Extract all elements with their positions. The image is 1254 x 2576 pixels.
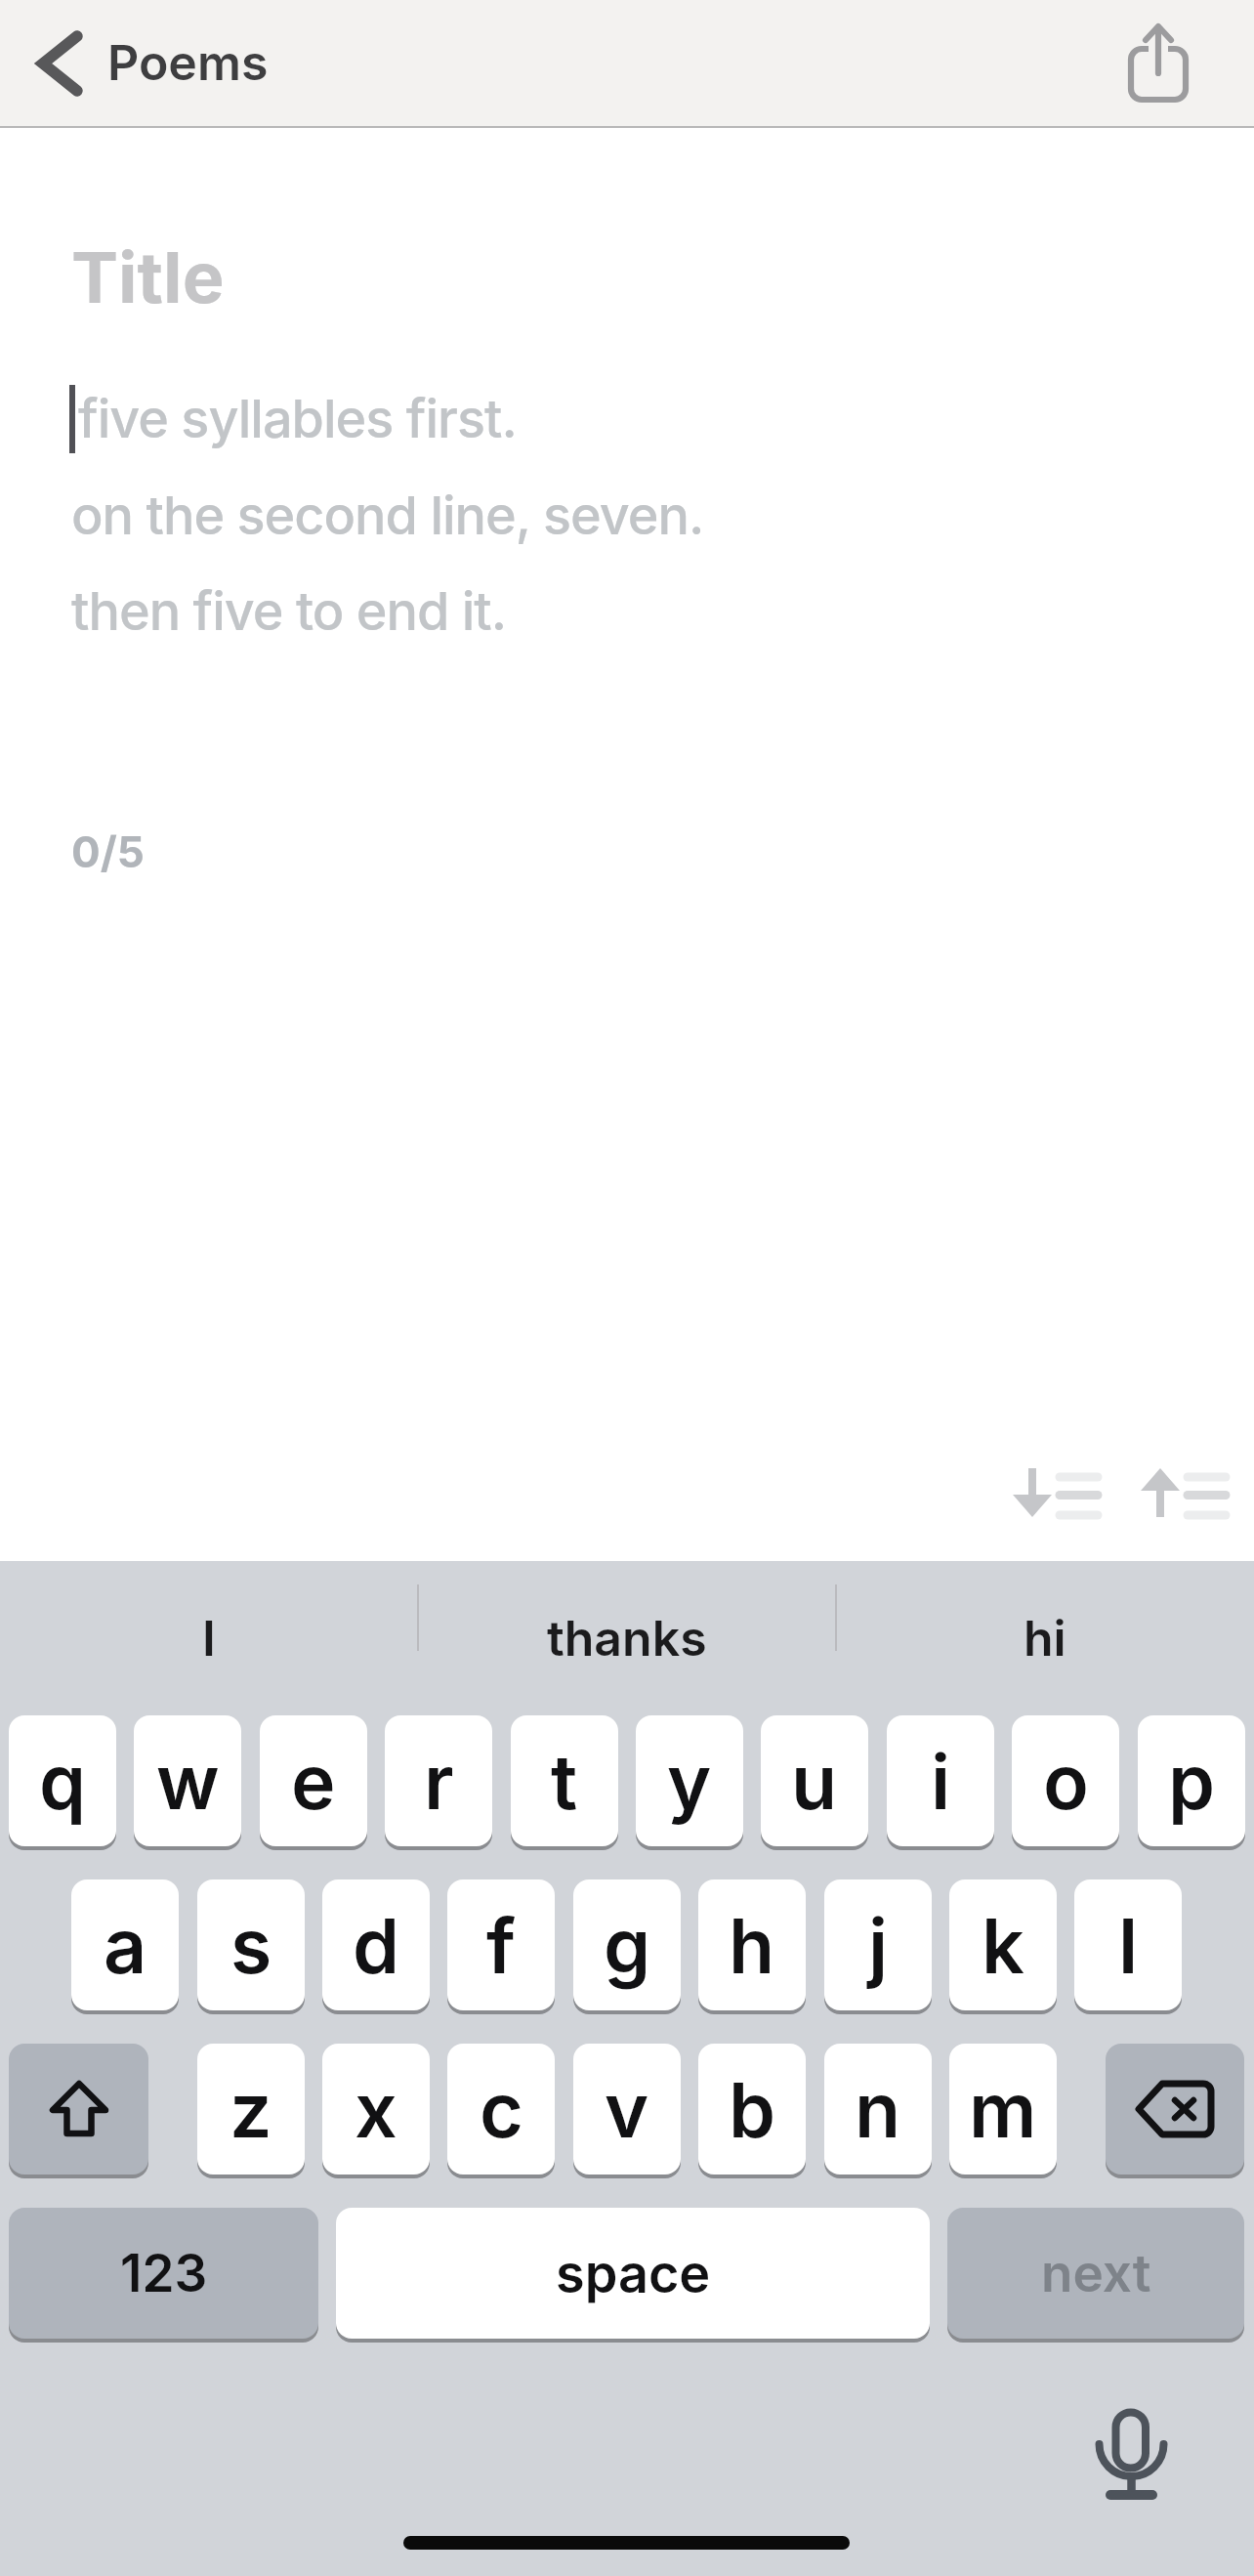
staticText: x	[355, 2064, 397, 2155]
button[interactable]: hi	[836, 1561, 1254, 1715]
staticText: 123	[120, 2242, 208, 2304]
staticText: space	[556, 2242, 711, 2305]
button[interactable]	[9, 2044, 148, 2175]
button[interactable]	[1104, 10, 1211, 117]
button[interactable]: f	[447, 1879, 555, 2010]
staticText: o	[1043, 1736, 1089, 1827]
staticText: then five to end it.	[71, 579, 507, 643]
staticText: t	[551, 1736, 578, 1827]
staticText: b	[729, 2064, 776, 2155]
button[interactable]: t	[511, 1715, 618, 1846]
staticText: on the second line, seven.	[71, 484, 704, 547]
staticText: j	[868, 1900, 889, 1991]
button[interactable]: l	[1074, 1879, 1182, 2010]
button[interactable]: thanks	[418, 1561, 836, 1715]
staticText: a	[104, 1900, 147, 1991]
staticText: m	[969, 2064, 1037, 2155]
button[interactable]	[29, 20, 283, 109]
button[interactable]: n	[824, 2044, 932, 2175]
button[interactable]	[1106, 2044, 1244, 2175]
staticText: I	[202, 1609, 216, 1668]
staticText: h	[729, 1900, 775, 1991]
button[interactable]: i	[887, 1715, 994, 1846]
staticText: z	[230, 2064, 272, 2155]
staticText: k	[982, 1900, 1024, 1991]
staticText: v	[605, 2064, 649, 2155]
staticText: d	[353, 1900, 400, 1991]
button[interactable]: e	[260, 1715, 367, 1846]
button[interactable]: r	[385, 1715, 492, 1846]
staticText: s	[230, 1900, 272, 1991]
button[interactable]: b	[698, 2044, 806, 2175]
staticText: w	[156, 1736, 220, 1827]
staticText: hi	[1024, 1609, 1066, 1668]
button[interactable]: v	[573, 2044, 681, 2175]
button[interactable]: c	[447, 2044, 555, 2175]
staticText: l	[1118, 1900, 1139, 1991]
staticText: n	[855, 2064, 901, 2155]
button[interactable]: a	[71, 1879, 179, 2010]
staticText: y	[667, 1736, 712, 1827]
staticText: i	[931, 1736, 951, 1827]
staticText: Title	[71, 234, 225, 319]
staticText: thanks	[547, 1609, 707, 1668]
button[interactable]: z	[197, 2044, 305, 2175]
staticText: 0/5	[71, 825, 145, 877]
button[interactable]: g	[573, 1879, 681, 2010]
staticText: f	[486, 1900, 516, 1991]
button[interactable]: s	[197, 1879, 305, 2010]
staticText: g	[604, 1900, 651, 1991]
staticText: u	[791, 1736, 838, 1827]
button[interactable]	[1004, 1461, 1234, 1524]
staticText: q	[39, 1736, 87, 1827]
button[interactable]	[1094, 2405, 1170, 2503]
button[interactable]: y	[636, 1715, 743, 1846]
staticText: p	[1168, 1736, 1216, 1827]
button[interactable]: w	[134, 1715, 241, 1846]
button[interactable]: o	[1012, 1715, 1119, 1846]
button[interactable]: q	[9, 1715, 116, 1846]
button[interactable]: 123	[9, 2208, 318, 2339]
button[interactable]: space	[336, 2208, 930, 2339]
staticText: e	[291, 1736, 336, 1827]
button[interactable]: next	[947, 2208, 1244, 2339]
button[interactable]: p	[1138, 1715, 1245, 1846]
button[interactable]: j	[824, 1879, 932, 2010]
button[interactable]: u	[761, 1715, 868, 1846]
button[interactable]: d	[322, 1879, 430, 2010]
button[interactable]: h	[698, 1879, 806, 2010]
staticText: five syllables first.	[78, 387, 517, 450]
button[interactable]: m	[949, 2044, 1057, 2175]
staticText: c	[480, 2064, 523, 2155]
staticText: Poems	[107, 33, 269, 92]
button[interactable]: k	[949, 1879, 1057, 2010]
button[interactable]: x	[322, 2044, 430, 2175]
staticText: next	[1041, 2242, 1151, 2304]
button[interactable]: I	[0, 1561, 418, 1715]
staticText: r	[424, 1736, 454, 1827]
